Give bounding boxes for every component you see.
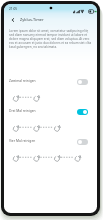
staticText: Zyklus-Timer	[20, 17, 44, 22]
button[interactable]: Zweimal reinigen	[4, 73, 97, 86]
button[interactable]: Drei Mal reinigen	[4, 103, 97, 116]
staticText: Lorem ipsum dolor sit amet, consetetur s…	[9, 29, 92, 49]
staticText: Zweimal reinigen	[9, 78, 36, 82]
staticText: 21:05	[9, 7, 18, 11]
button[interactable]: Vier Mal reinigen	[4, 133, 97, 146]
button[interactable]: Back	[8, 15, 17, 24]
staticText: Drei Mal reinigen	[9, 108, 36, 112]
staticText: Vier Mal reinigen	[9, 138, 36, 142]
